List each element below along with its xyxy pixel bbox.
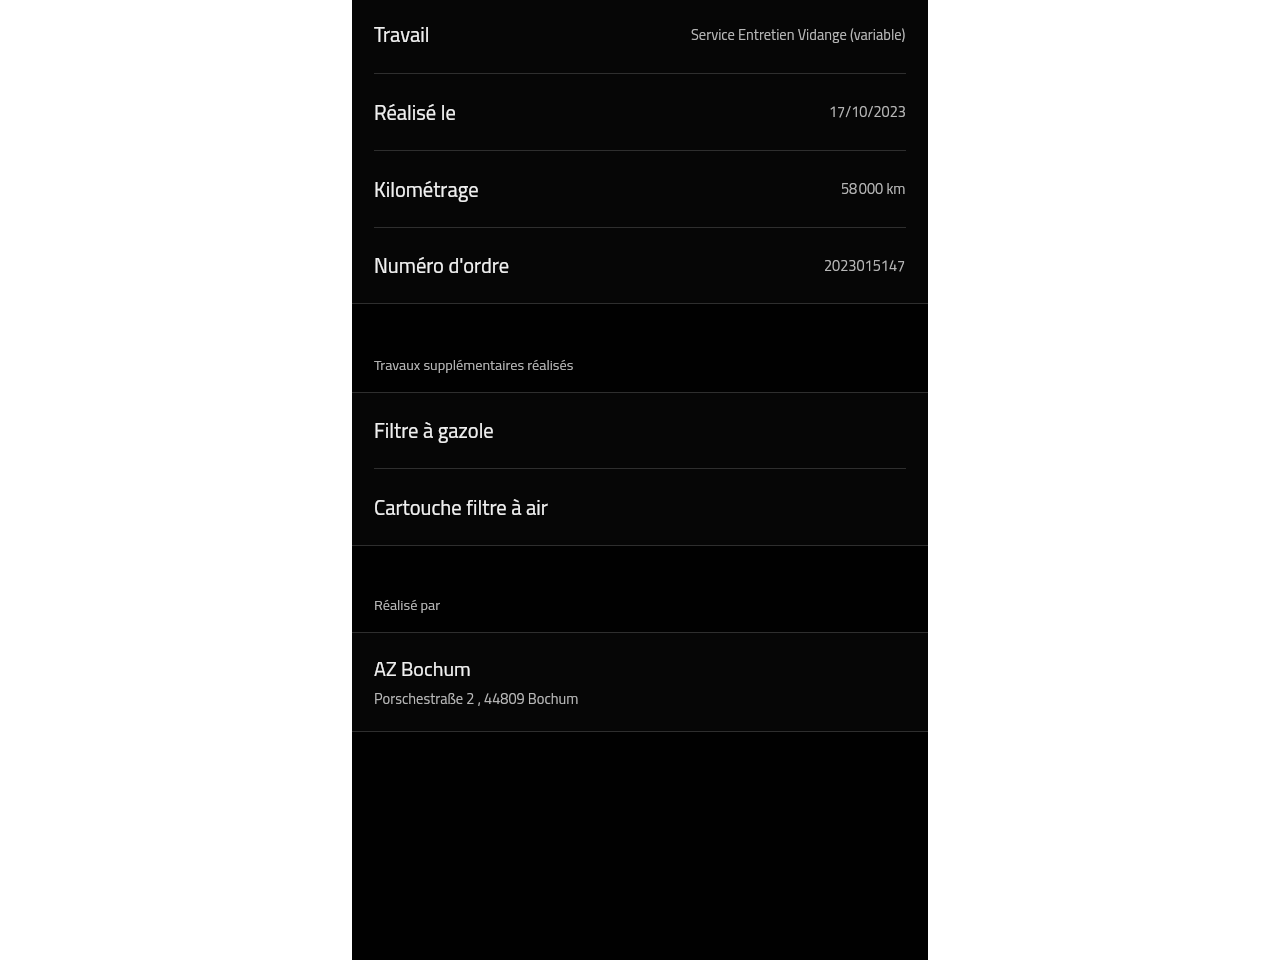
button[interactable]: Réalisé le [352, 74, 928, 150]
staticText: Numéro d'ordre [374, 250, 509, 281]
staticText: Travail [374, 19, 430, 50]
staticText: Travaux supplémentaires réalisés [374, 354, 574, 376]
button[interactable]: AZ Bochum [352, 633, 928, 731]
staticText: Kilométrage [374, 174, 479, 205]
staticText: 17/10/2023 [829, 101, 906, 123]
staticText: Filtre à gazole [374, 415, 494, 446]
staticText: Réalisé par [374, 594, 441, 616]
button[interactable]: Travail [352, 0, 928, 73]
staticText: Service Entretien Vidange (variable) [691, 24, 906, 46]
staticText: AZ Bochum [374, 653, 471, 683]
button[interactable]: Kilométrage [352, 151, 928, 227]
staticText: Réalisé le [374, 97, 456, 128]
staticText: Porschestraße 2 , 44809 Bochum [374, 688, 579, 710]
staticText: 2023015147 [824, 255, 906, 277]
button[interactable]: Cartouche filtre à air [352, 469, 928, 545]
button[interactable]: Filtre à gazole [352, 393, 928, 468]
staticText: 58 000 km [841, 178, 906, 200]
staticText: Cartouche filtre à air [374, 492, 548, 523]
button[interactable]: Numéro d'ordre [352, 228, 928, 303]
